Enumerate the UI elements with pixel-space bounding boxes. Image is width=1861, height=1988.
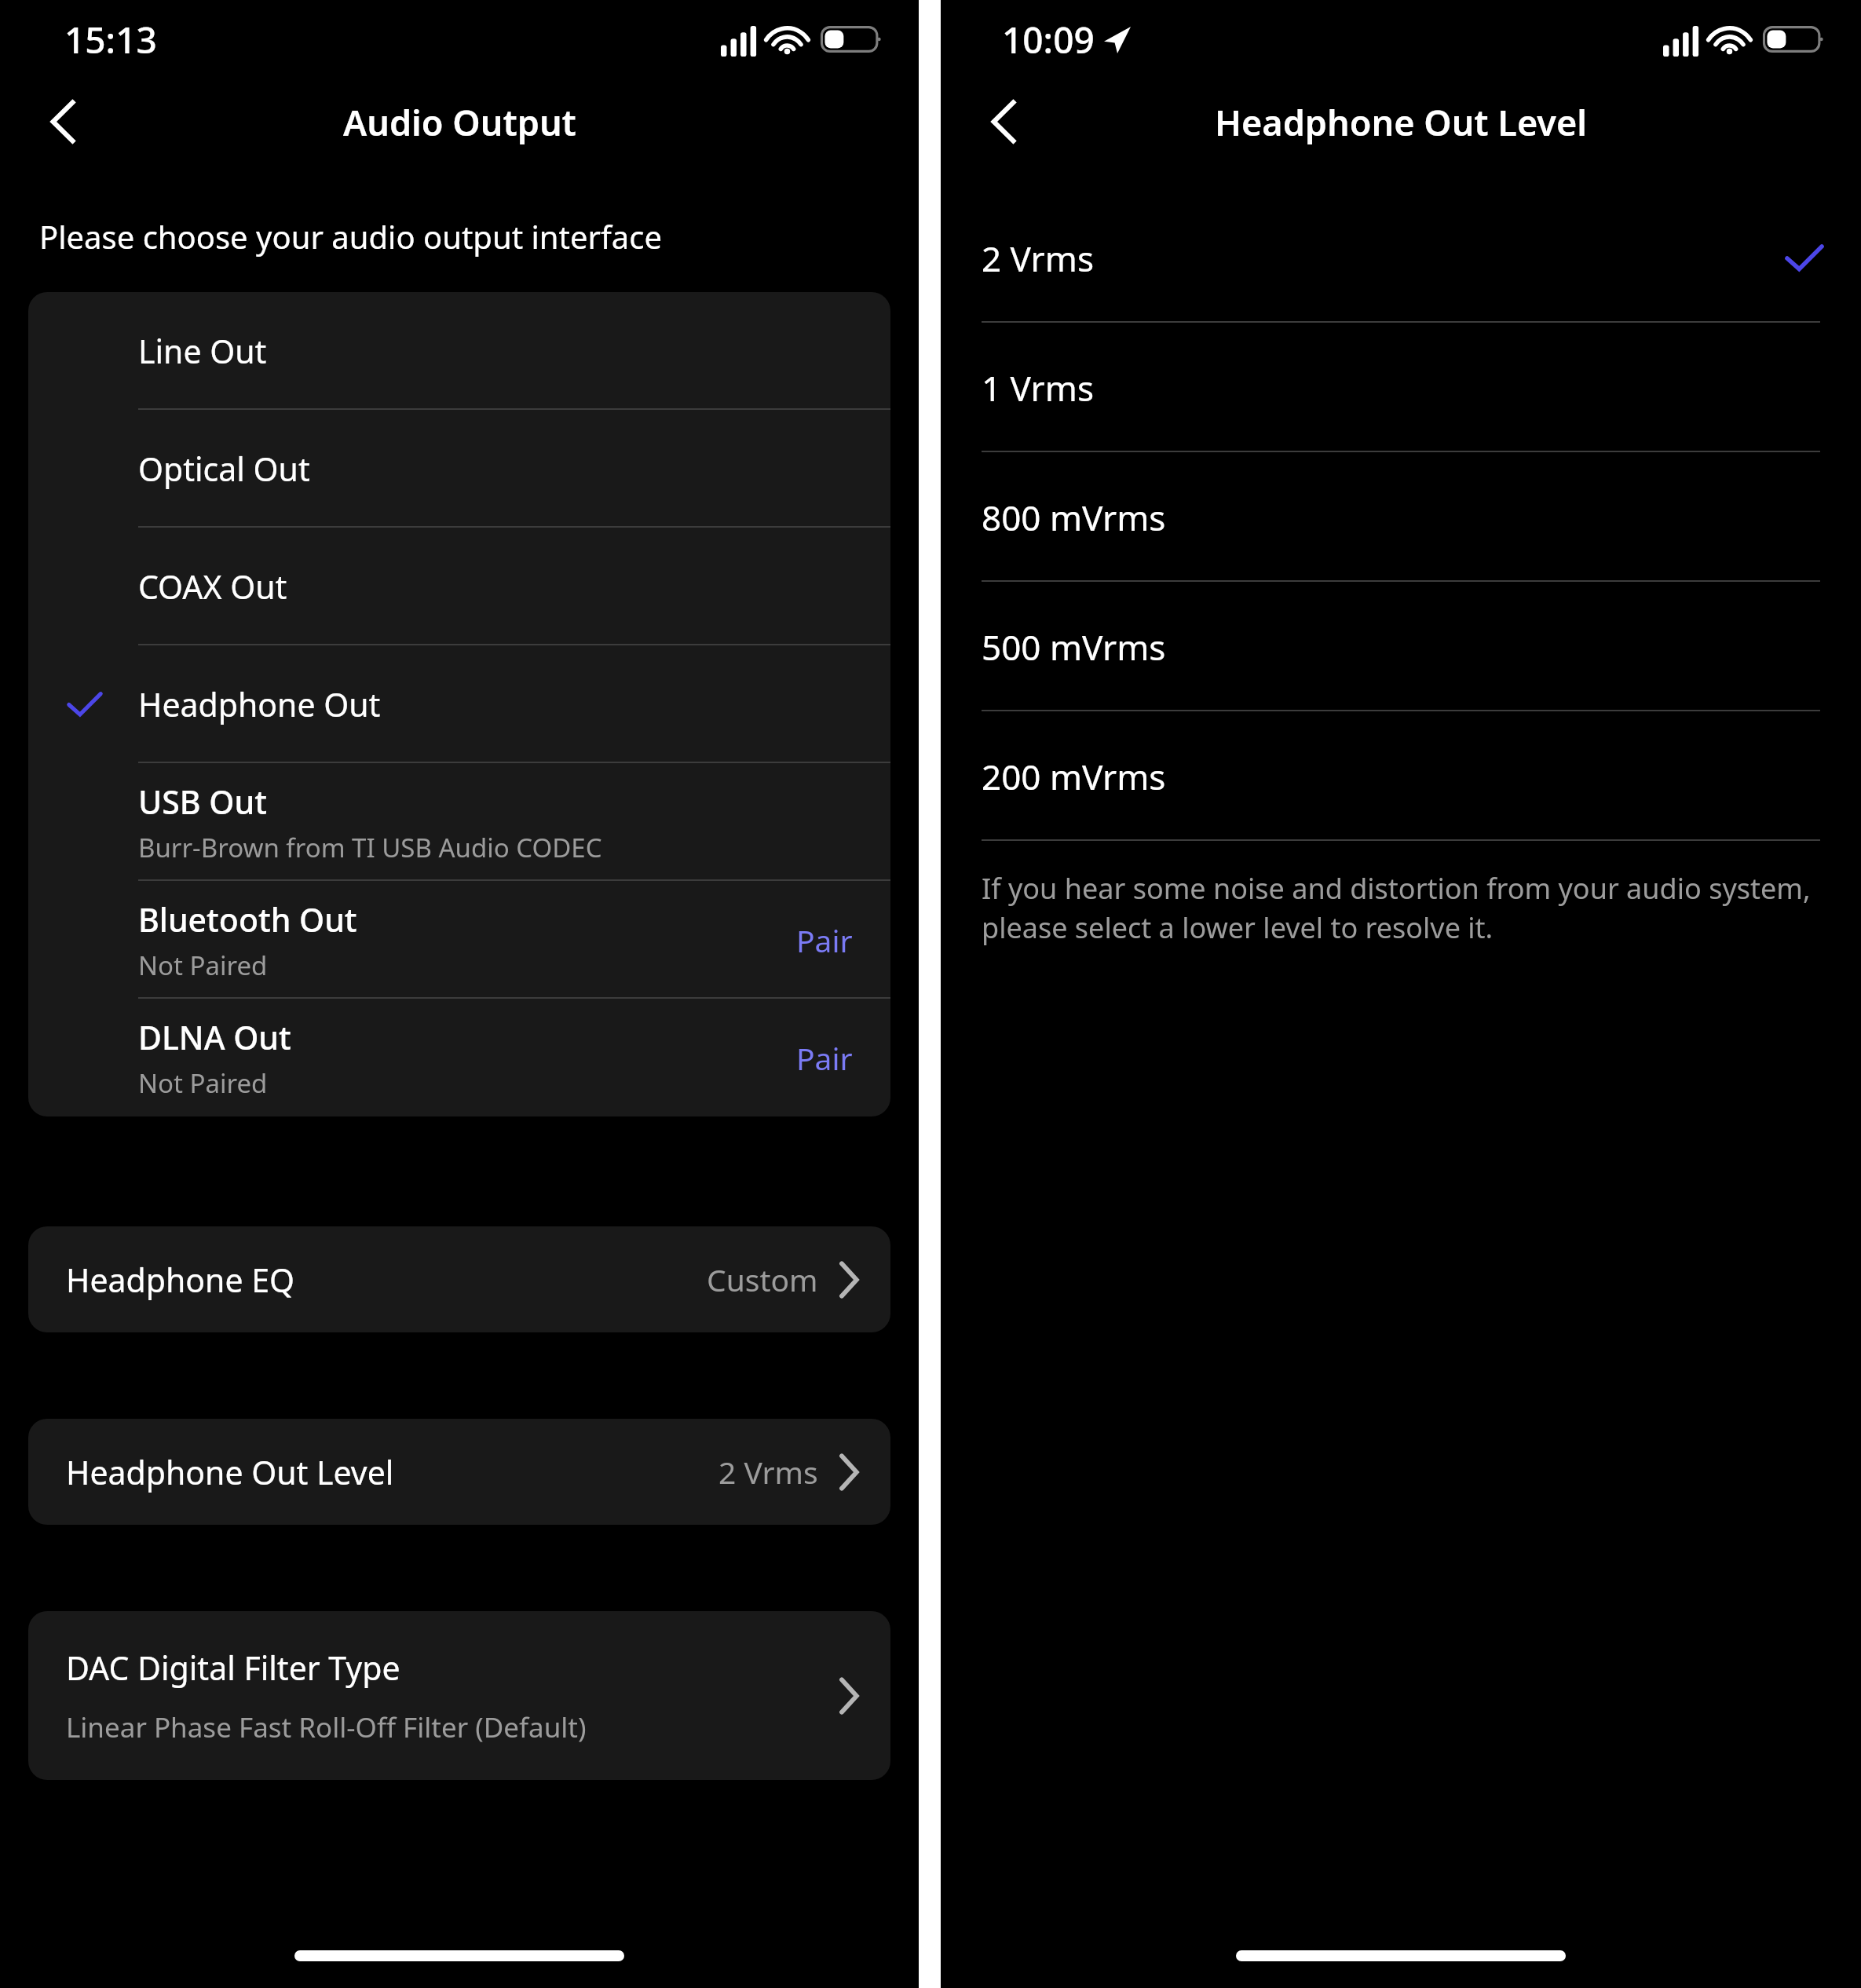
button[interactable]: DAC Digital Filter Type: [28, 1611, 890, 1780]
button[interactable]: Headphone Out: [28, 645, 890, 763]
button[interactable]: Back: [969, 86, 1041, 158]
staticText: Line Out: [138, 329, 267, 373]
staticText: Audio Output: [343, 98, 576, 146]
button[interactable]: 800 mVrms: [941, 452, 1861, 582]
staticText: Pair: [796, 919, 853, 961]
staticText: Please choose your audio output interfac…: [39, 215, 663, 258]
button[interactable]: Back: [28, 86, 101, 158]
button[interactable]: Pair: [785, 1029, 864, 1087]
staticText: 800 mVrms: [982, 494, 1166, 541]
staticText: Burr-Brown from TI USB Audio CODEC: [138, 830, 602, 865]
button[interactable]: 1 Vrms: [941, 323, 1861, 452]
button[interactable]: Pair: [785, 912, 864, 969]
staticText: 2 Vrms: [982, 235, 1094, 282]
staticText: 1 Vrms: [982, 364, 1094, 411]
staticText: 10:09: [1002, 15, 1095, 64]
staticText: 15:13: [64, 15, 157, 64]
button[interactable]: 2 Vrms: [941, 193, 1861, 323]
staticText: Headphone Out Level: [1215, 98, 1587, 146]
button[interactable]: USB Out: [28, 763, 890, 881]
button[interactable]: Line Out: [28, 292, 890, 410]
staticText: Not Paired: [138, 1065, 268, 1101]
staticText: 500 mVrms: [982, 623, 1166, 671]
button[interactable]: Bluetooth Out: [28, 881, 890, 999]
button[interactable]: 500 mVrms: [941, 582, 1861, 711]
staticText: DAC Digital Filter Type: [66, 1646, 400, 1690]
staticText: If you hear some noise and distortion fr…: [982, 869, 1820, 947]
button[interactable]: Headphone EQ: [28, 1226, 890, 1332]
button[interactable]: DLNA Out: [28, 999, 890, 1116]
staticText: Pair: [796, 1037, 853, 1079]
staticText: Headphone EQ: [66, 1258, 707, 1302]
staticText: DLNA Out: [138, 1015, 291, 1059]
staticText: Optical Out: [138, 447, 310, 491]
staticText: 200 mVrms: [982, 753, 1166, 800]
staticText: 2 Vrms: [718, 1451, 818, 1493]
staticText: USB Out: [138, 780, 267, 824]
staticText: Custom: [707, 1259, 818, 1300]
button[interactable]: COAX Out: [28, 528, 890, 645]
button[interactable]: 200 mVrms: [941, 711, 1861, 841]
staticText: Headphone Out: [138, 682, 381, 726]
staticText: Bluetooth Out: [138, 897, 357, 941]
button[interactable]: Headphone Out Level: [28, 1419, 890, 1525]
staticText: Headphone Out Level: [66, 1450, 718, 1494]
staticText: Not Paired: [138, 948, 268, 983]
staticText: Linear Phase Fast Roll-Off Filter (Defau…: [66, 1708, 587, 1746]
staticText: COAX Out: [138, 565, 287, 608]
button[interactable]: Optical Out: [28, 410, 890, 528]
